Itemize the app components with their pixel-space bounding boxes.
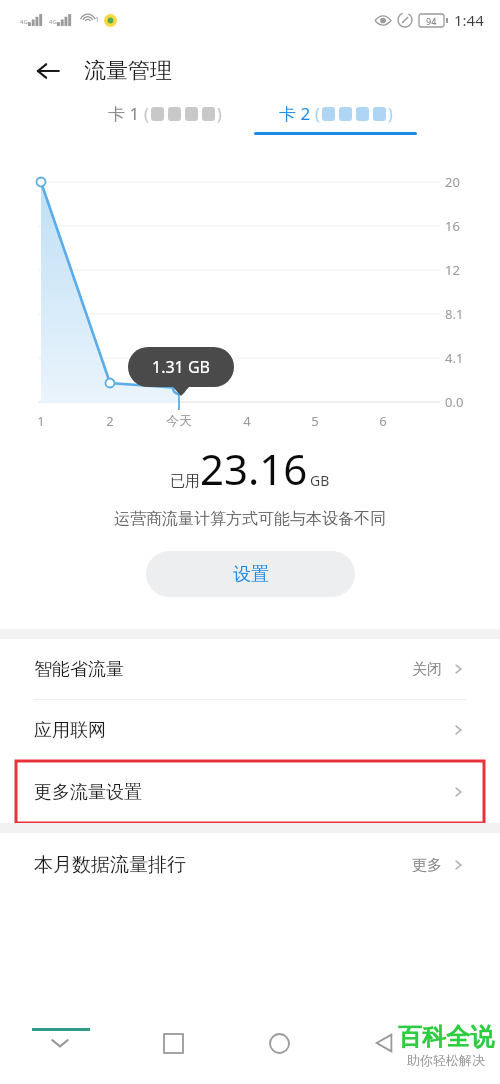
staticText: 4G bbox=[20, 18, 28, 26]
staticText: 已用 bbox=[170, 472, 200, 491]
staticText: 卡 2 bbox=[279, 102, 311, 125]
staticText: 关闭 bbox=[412, 660, 442, 679]
button[interactable]: Back bbox=[332, 1010, 438, 1076]
staticText: 5 bbox=[311, 412, 319, 430]
staticText: 助你轻松解决 bbox=[407, 1052, 485, 1068]
staticText: 4G bbox=[49, 18, 57, 26]
staticText: 设置 bbox=[233, 563, 269, 586]
button[interactable]: 更多流量设置 bbox=[34, 761, 466, 823]
button[interactable]: 本月数据流量排行 bbox=[34, 833, 466, 897]
button[interactable]: Home bbox=[226, 1010, 332, 1076]
staticText: 智能省流量 bbox=[34, 658, 124, 681]
staticText: ( bbox=[315, 103, 320, 125]
staticText: 8.1 bbox=[445, 305, 464, 323]
staticText: 4 bbox=[243, 412, 251, 430]
staticText: 卡 1 bbox=[108, 102, 140, 125]
staticText: 94 bbox=[426, 15, 437, 27]
staticText: 16 bbox=[445, 217, 460, 235]
staticText: 今天 bbox=[166, 412, 192, 428]
staticText: 更多流量设置 bbox=[34, 781, 142, 804]
button[interactable]: 卡 2 bbox=[250, 102, 420, 152]
staticText: 0.0 bbox=[445, 393, 464, 411]
staticText: 1 bbox=[95, 15, 100, 25]
button[interactable]: 设置 bbox=[146, 551, 355, 597]
staticText: 流量管理 bbox=[84, 57, 172, 85]
staticText: 运营商流量计算方式可能与本设备不同 bbox=[114, 509, 386, 529]
staticText: 2 bbox=[106, 412, 114, 430]
staticText: 4.1 bbox=[445, 349, 464, 367]
staticText: 应用联网 bbox=[34, 719, 106, 742]
button[interactable]: Back bbox=[30, 53, 66, 89]
staticText: GB bbox=[310, 471, 330, 490]
button[interactable]: Recent apps bbox=[120, 1010, 226, 1076]
button[interactable]: 智能省流量 bbox=[34, 639, 466, 699]
staticText: 百科全说 bbox=[398, 1022, 494, 1052]
staticText: 1:44 bbox=[454, 10, 484, 30]
button[interactable]: 应用联网 bbox=[34, 700, 466, 760]
staticText: 23.16 bbox=[200, 440, 308, 497]
staticText: ) bbox=[217, 103, 222, 125]
staticText: 6 bbox=[379, 412, 387, 430]
button[interactable]: Hide bbox=[0, 1010, 120, 1076]
staticText: 12 bbox=[445, 261, 460, 279]
button[interactable]: 卡 1 bbox=[80, 102, 250, 152]
staticText: 1.31 GB bbox=[152, 356, 210, 378]
staticText: 更多 bbox=[412, 856, 442, 875]
staticText: ( bbox=[144, 103, 149, 125]
staticText: 本月数据流量排行 bbox=[34, 853, 186, 877]
staticText: ) bbox=[388, 103, 393, 125]
staticText: 20 bbox=[445, 173, 460, 191]
staticText: 1 bbox=[37, 412, 45, 430]
